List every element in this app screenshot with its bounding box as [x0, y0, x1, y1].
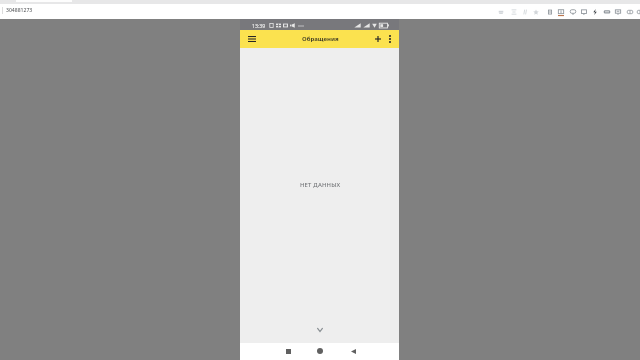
button[interactable]: Browser action 8 [578, 6, 589, 17]
button[interactable]: Browser action 9 [589, 6, 600, 17]
button[interactable]: Home [313, 344, 327, 358]
button[interactable]: More options [384, 33, 396, 45]
button[interactable]: Browser action 13 [634, 6, 640, 17]
button[interactable]: Open navigation menu [244, 31, 260, 47]
button[interactable]: Expand [313, 323, 327, 337]
button[interactable]: Add [371, 32, 385, 46]
button[interactable]: Browser action 3 [519, 6, 530, 17]
button[interactable]: Browser action 12 [624, 6, 635, 17]
button[interactable]: Recent apps [281, 344, 295, 358]
button[interactable]: Browser action 10 [601, 6, 612, 17]
button[interactable]: Browser action 2 [508, 6, 519, 17]
button[interactable]: Browser action 11 [612, 6, 623, 17]
button[interactable]: Back [346, 344, 360, 358]
staticText: НЕТ ДАННЫХ [300, 181, 341, 189]
button[interactable]: Browser action 6 [555, 6, 566, 17]
button[interactable]: Browser action 7 [567, 6, 578, 17]
staticText: Обращения [302, 35, 339, 43]
button[interactable]: Browser action 4 [530, 6, 541, 17]
button[interactable]: 304881273 [6, 3, 33, 18]
button[interactable]: Browser action 1 [495, 6, 506, 17]
button[interactable]: Browser action 5 [544, 6, 555, 17]
staticText: 304881273 [6, 7, 33, 14]
staticText: 13:39 [252, 22, 266, 29]
